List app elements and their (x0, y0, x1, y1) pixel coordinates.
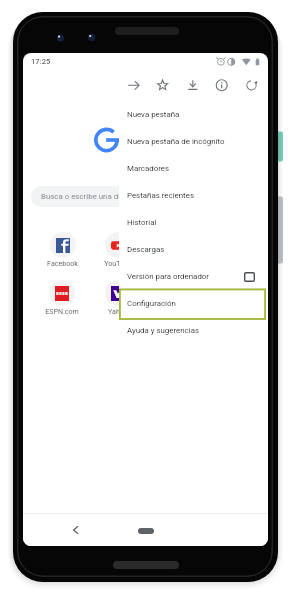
button[interactable]: Twitch (150, 232, 198, 271)
button[interactable]: Historial (119, 209, 266, 236)
staticText: Marcadores (127, 164, 170, 173)
button[interactable]: Home (138, 528, 154, 534)
staticText: Nueva pestaña (127, 110, 180, 119)
button[interactable]: ESPN.com (38, 280, 86, 319)
staticText: Versión para ordenador (127, 272, 210, 281)
button[interactable]: YouTube (94, 232, 142, 271)
button[interactable]: eBay (206, 280, 254, 319)
button[interactable]: Busca o escribe una dirección (31, 186, 221, 207)
button[interactable]: Reddit (150, 280, 198, 319)
button[interactable]: Back (64, 519, 86, 541)
staticText: Historial (127, 218, 157, 227)
staticText: Nueva pestaña de incógnito (127, 137, 225, 146)
staticText: 17:25 (31, 57, 51, 66)
staticText: Configuración (127, 299, 176, 308)
staticText: Yahoo (108, 307, 128, 315)
button[interactable]: Nueva pestaña (119, 101, 266, 128)
button[interactable]: Configuración (119, 290, 266, 317)
staticText: Pestañas recientes (127, 191, 194, 200)
button[interactable]: Ayuda y sugerencias (119, 317, 266, 343)
button[interactable]: Marcadores (119, 155, 266, 182)
button[interactable]: Descargas (119, 236, 266, 263)
staticText: ESPN.com (45, 307, 79, 315)
staticText: Facebook (47, 259, 78, 267)
button[interactable]: Nueva pestaña de incógnito (119, 128, 266, 155)
staticText: Busca o escribe una dirección (41, 192, 146, 201)
button[interactable]: Pestañas recientes (119, 182, 266, 209)
button[interactable]: Facebook (38, 232, 86, 271)
staticText: YouTube (104, 259, 132, 267)
staticText: Descargas (127, 245, 165, 254)
staticText: Ayuda y sugerencias (127, 326, 200, 335)
button[interactable]: Yahoo (94, 280, 142, 319)
button[interactable]: Versión para ordenador (119, 263, 266, 290)
